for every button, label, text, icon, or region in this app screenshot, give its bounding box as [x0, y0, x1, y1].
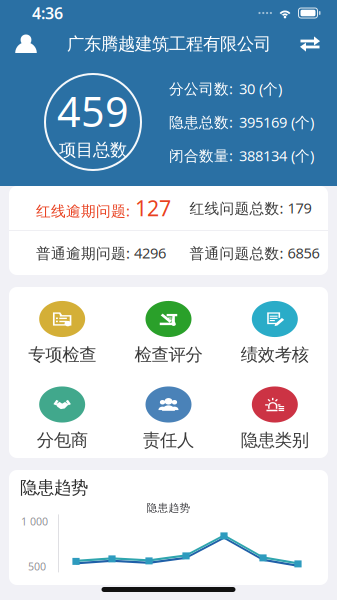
staticText: 红线逾期问题: [36, 201, 130, 221]
staticText: 30 (个) [239, 79, 282, 98]
staticText: 隐患总数: [169, 112, 233, 132]
staticText: 4:36 [32, 2, 63, 24]
staticText: 普通逾期问题: [36, 243, 130, 263]
staticText: 闭合数量: [169, 146, 233, 165]
staticText: 广东腾越建筑工程有限公司 [67, 33, 271, 55]
button[interactable]: Profile [7, 27, 45, 61]
button[interactable]: 专项检查 [9, 287, 115, 372]
button[interactable]: 分包商 [9, 372, 115, 458]
staticText: 127 [135, 194, 171, 222]
staticText: 388134 (个) [239, 146, 314, 165]
staticText: 隐患趋势 [146, 501, 190, 514]
button[interactable]: 检查评分 [115, 287, 222, 372]
staticText: 责任人 [143, 429, 194, 451]
staticText: 红线问题总数: [189, 198, 283, 218]
staticText: 分包商 [37, 429, 88, 451]
staticText: 179 [287, 198, 311, 218]
staticText: 6856 [287, 243, 319, 263]
staticText: 隐患趋势 [20, 477, 88, 498]
button[interactable]: Switch company [293, 27, 327, 61]
staticText: 459 [57, 83, 129, 138]
staticText: 分公司数: [169, 79, 233, 98]
staticText: 隐患类别 [241, 429, 309, 451]
button[interactable]: 隐患类别 [222, 372, 328, 458]
staticText: 1 000 [21, 514, 48, 529]
staticText: 395169 (个) [239, 112, 314, 132]
button[interactable]: 普通逾期问题: [9, 231, 168, 275]
staticText: 专项检查 [28, 344, 96, 365]
button[interactable]: 红线问题总数: [168, 186, 328, 230]
button[interactable]: 责任人 [115, 372, 222, 458]
button[interactable]: 红线逾期问题: [9, 186, 168, 230]
staticText: 检查评分 [134, 344, 202, 365]
staticText: 项目总数 [59, 139, 127, 161]
button[interactable]: 绩效考核 [222, 287, 328, 372]
staticText: 绩效考核 [241, 344, 309, 365]
button[interactable]: 普通问题总数: [168, 231, 328, 275]
staticText: 普通问题总数: [189, 243, 283, 263]
staticText: 4296 [134, 243, 166, 263]
staticText: 500 [28, 559, 46, 574]
